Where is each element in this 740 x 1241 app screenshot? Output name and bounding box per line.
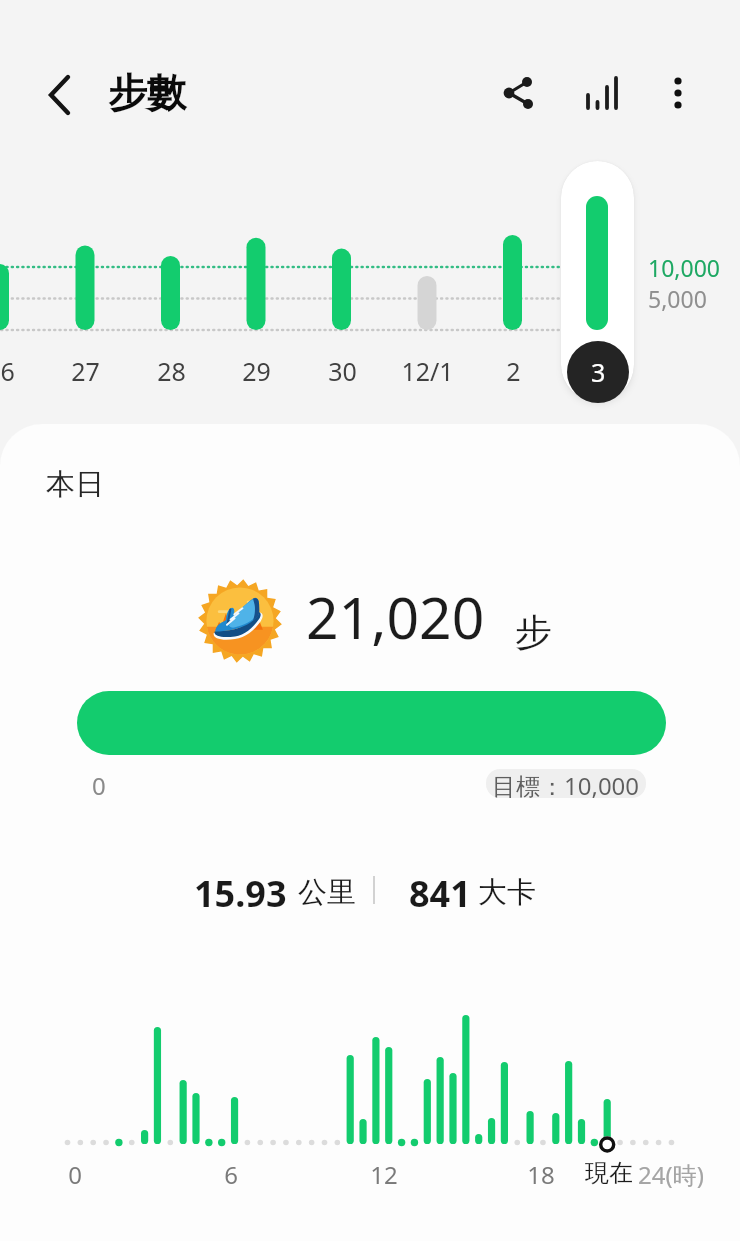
staticText: 21,020	[306, 578, 485, 656]
staticText: 15.93	[194, 869, 287, 918]
staticText: 大卡	[478, 874, 536, 911]
staticText: 5,000	[648, 283, 707, 314]
staticText: 目標：10,000	[492, 769, 640, 798]
staticText: 24(時)	[638, 1158, 704, 1191]
staticText: 3	[591, 354, 606, 388]
staticText: 27	[71, 354, 100, 388]
staticText: 18	[527, 1158, 555, 1191]
staticText: 6	[224, 1158, 238, 1191]
button[interactable]: 2	[471, 150, 555, 390]
button[interactable]: Trends	[572, 58, 632, 118]
staticText: 841	[409, 869, 471, 918]
button[interactable]	[77, 691, 666, 755]
staticText: 2	[506, 354, 521, 388]
staticText: 公里	[298, 874, 356, 911]
staticText: 10,000	[648, 252, 720, 283]
button[interactable]: 26	[0, 150, 42, 390]
button[interactable]: 27	[43, 150, 127, 390]
button[interactable]: More options	[648, 58, 708, 118]
staticText: 30	[328, 354, 357, 388]
button[interactable]: Share	[489, 58, 551, 120]
staticText: 本日	[46, 466, 104, 503]
button[interactable]: 29	[214, 150, 298, 390]
button[interactable]: 30	[300, 150, 384, 390]
staticText: 步	[515, 609, 552, 656]
button[interactable]: 28	[129, 150, 213, 390]
staticText: 29	[242, 354, 271, 388]
staticText: 26	[0, 354, 15, 388]
staticText: 0	[68, 1158, 82, 1191]
staticText: 12	[370, 1158, 398, 1191]
button[interactable]: 12/1	[385, 150, 469, 390]
staticText: 步數	[108, 68, 186, 117]
button[interactable]: Back	[30, 62, 94, 126]
staticText: 12/1	[401, 354, 454, 388]
staticText: 3	[591, 355, 606, 389]
staticText: 28	[157, 354, 186, 388]
button[interactable]	[561, 161, 634, 401]
staticText: 0	[92, 769, 106, 802]
staticText: 現在	[585, 1158, 633, 1188]
